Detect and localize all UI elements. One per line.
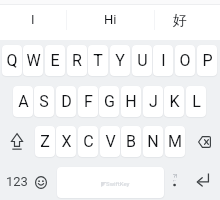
staticText: I [161, 51, 166, 70]
button[interactable]: I [153, 45, 173, 76]
button[interactable]: B [121, 126, 141, 157]
button[interactable]: D [56, 86, 76, 117]
staticText: T [93, 51, 103, 70]
button[interactable]: I [0, 2, 66, 37]
button[interactable]: O [175, 45, 195, 76]
button[interactable]: Shift [5, 126, 29, 157]
button[interactable]: Emoji [30, 167, 52, 198]
staticText: D [61, 92, 72, 111]
staticText: A [18, 92, 29, 111]
staticText: I [31, 12, 35, 27]
button[interactable]: R [67, 45, 87, 76]
staticText: S [39, 92, 49, 111]
button[interactable]: C [78, 126, 98, 157]
staticText: V [105, 132, 116, 151]
button[interactable]: Q [2, 45, 22, 76]
button[interactable]: S [34, 86, 54, 117]
button[interactable]: N [143, 126, 163, 157]
staticText: SwiftKey [106, 180, 130, 187]
button[interactable]: E [45, 45, 65, 76]
staticText: 123 [6, 174, 28, 189]
staticText: C [83, 132, 94, 151]
staticText: ,. [173, 175, 176, 182]
button[interactable]: P [197, 45, 217, 76]
button[interactable]: V [100, 126, 120, 157]
button[interactable]: F [78, 86, 98, 117]
button[interactable]: X [56, 126, 76, 157]
button[interactable]: Z [35, 126, 55, 157]
staticText: R [72, 51, 82, 70]
button[interactable]: H [121, 86, 141, 117]
button[interactable]: Y [110, 45, 130, 76]
staticText: F [84, 92, 93, 111]
button[interactable]: 好 [154, 3, 206, 38]
staticText: Hi [104, 12, 117, 27]
staticText: W [26, 51, 41, 70]
button[interactable]: W [23, 45, 43, 76]
staticText: L [192, 92, 201, 111]
staticText: X [61, 132, 72, 151]
button[interactable]: 123 [4, 166, 30, 197]
staticText: O [179, 51, 191, 70]
button[interactable]: Space [57, 167, 164, 198]
staticText: Z [40, 132, 50, 151]
staticText: U [137, 51, 148, 70]
button[interactable]: Punctuation [165, 165, 187, 196]
staticText: M [168, 132, 182, 151]
button[interactable]: Enter [190, 164, 216, 195]
staticText: ?! [173, 172, 178, 179]
button[interactable]: M [165, 126, 185, 157]
staticText: K [169, 92, 180, 111]
staticText: 好 [173, 12, 187, 30]
staticText: N [147, 132, 159, 151]
staticText: E [50, 51, 60, 70]
button[interactable]: T [88, 45, 108, 76]
staticText: Q [6, 51, 18, 70]
button[interactable]: J [143, 86, 163, 117]
button[interactable]: A [13, 86, 33, 117]
button[interactable]: L [186, 86, 206, 117]
staticText: G [104, 92, 115, 111]
button[interactable]: G [99, 86, 119, 117]
button[interactable]: K [164, 86, 184, 117]
button[interactable]: Backspace [192, 126, 216, 157]
staticText: Y [115, 51, 125, 70]
staticText: H [125, 92, 137, 111]
staticText: J [149, 92, 158, 111]
button[interactable]: U [132, 45, 152, 76]
button[interactable]: Hi [66, 2, 154, 37]
staticText: P [202, 51, 213, 70]
staticText: B [126, 132, 136, 151]
